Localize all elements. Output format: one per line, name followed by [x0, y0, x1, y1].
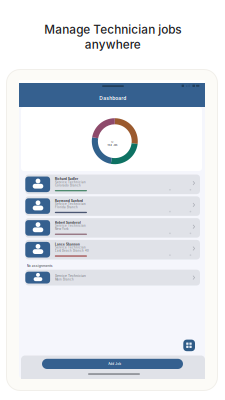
- button[interactable]: Add Job: [0, 0, 225, 400]
- staticText: Lance Shannon: [55, 243, 80, 246]
- button[interactable]: Richard Sadler: [0, 0, 225, 400]
- staticText: Richard Sadler: [55, 177, 78, 181]
- staticText: Dashboard: [99, 95, 126, 101]
- staticText: East Beach Branch 40: [55, 249, 89, 252]
- staticText: 12: [111, 141, 113, 143]
- staticText: Manage Technician jobs: [44, 22, 181, 37]
- staticText: Florida Branch: [55, 206, 78, 209]
- staticText: No assignments: [27, 264, 53, 268]
- staticText: Colorado Branch: [55, 184, 81, 187]
- button[interactable]: Robert Sandoval: [0, 0, 225, 400]
- staticText: Service Technician: [55, 224, 86, 227]
- staticText: Total Jobs: [107, 144, 117, 147]
- button[interactable]: Apps: [0, 0, 225, 400]
- button[interactable]: Raymond Sanford: [0, 0, 225, 400]
- staticText: Robert Sandoval: [55, 221, 81, 224]
- staticText: Service Technician: [55, 202, 86, 206]
- staticText: Service Technician: [55, 274, 86, 278]
- staticText: Main Branch: [55, 278, 74, 281]
- staticText: New York: [55, 227, 69, 231]
- button[interactable]: Service Technician: [0, 0, 225, 400]
- staticText: Service Technician: [55, 246, 86, 249]
- staticText: Service Technician: [55, 180, 86, 184]
- button[interactable]: Lance Shannon: [0, 0, 225, 400]
- staticText: Add Job: [108, 362, 121, 366]
- staticText: Raymond Sanford: [55, 199, 83, 203]
- staticText: anywhere: [85, 37, 141, 52]
